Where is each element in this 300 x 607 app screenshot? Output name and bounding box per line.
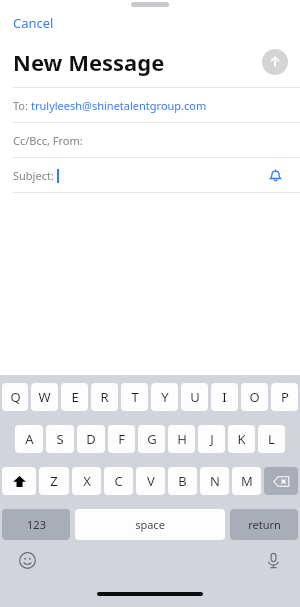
button[interactable]: 123 (2, 509, 70, 540)
button[interactable]: Backspace (264, 467, 298, 495)
staticText: D (86, 430, 96, 448)
button[interactable]: Shift (2, 467, 36, 495)
staticText: return (248, 517, 281, 532)
button[interactable]: M (232, 467, 261, 495)
staticText: N (210, 472, 220, 490)
staticText: Q (10, 388, 21, 406)
staticText: R (100, 388, 109, 406)
staticText: space (135, 517, 165, 532)
button[interactable]: Notify me (264, 164, 286, 186)
button[interactable]: W (31, 383, 58, 411)
staticText: S (56, 430, 64, 448)
button[interactable]: Z (39, 467, 69, 495)
staticText: Subject: (13, 168, 57, 183)
staticText: Cancel (13, 14, 54, 32)
button[interactable]: N (200, 467, 229, 495)
staticText: U (190, 388, 200, 406)
button[interactable]: G (138, 425, 165, 453)
button[interactable]: F (108, 425, 135, 453)
button[interactable]: O (241, 383, 268, 411)
button[interactable]: S (46, 425, 74, 453)
staticText: H (177, 430, 187, 448)
staticText: G (147, 430, 157, 448)
staticText: X (83, 472, 91, 490)
button[interactable]: Cancel (11, 12, 56, 34)
button[interactable]: R (91, 383, 118, 411)
button[interactable]: T (121, 383, 148, 411)
staticText: trulyleesh@shinetalentgroup.com (31, 98, 207, 113)
staticText: F (118, 430, 125, 448)
button[interactable]: K (228, 425, 255, 453)
button[interactable]: To: (0, 88, 300, 122)
button[interactable]: V (136, 467, 165, 495)
staticText: T (131, 388, 139, 406)
staticText: J (210, 430, 214, 448)
button[interactable]: C (104, 467, 133, 495)
button[interactable]: B (168, 467, 197, 495)
button[interactable]: Q (2, 383, 28, 411)
staticText: 123 (27, 517, 46, 532)
staticText: I (222, 388, 227, 406)
button[interactable]: D (77, 425, 105, 453)
button[interactable]: Subject: (0, 158, 300, 192)
button[interactable]: E (61, 383, 88, 411)
staticText: B (178, 472, 187, 490)
button[interactable]: U (181, 383, 208, 411)
button[interactable]: Emoji (17, 550, 37, 570)
staticText: P (281, 388, 289, 406)
button[interactable]: space (75, 509, 225, 540)
button[interactable]: Y (151, 383, 178, 411)
staticText: C (114, 472, 123, 490)
staticText: Z (50, 472, 58, 490)
staticText: W (38, 388, 51, 406)
staticText: E (71, 388, 79, 406)
button[interactable]: Send (262, 49, 288, 75)
staticText: V (147, 472, 155, 490)
staticText: Cc/Bcc, From: (13, 133, 83, 148)
button[interactable]: X (72, 467, 101, 495)
button[interactable]: Dictation (263, 550, 283, 570)
staticText: M (241, 472, 253, 490)
staticText: To: (13, 98, 31, 113)
button[interactable]: I (211, 383, 238, 411)
staticText: A (25, 430, 34, 448)
staticText: K (237, 430, 246, 448)
staticText: Y (161, 388, 169, 406)
button[interactable]: return (230, 509, 298, 540)
button[interactable]: L (258, 425, 285, 453)
staticText: L (268, 430, 275, 448)
button[interactable]: H (168, 425, 195, 453)
button[interactable]: P (271, 383, 298, 411)
staticText: O (249, 388, 260, 406)
button[interactable]: Cc/Bcc, From: (0, 123, 300, 157)
staticText: New Message (13, 47, 165, 77)
button[interactable]: A (15, 425, 43, 453)
button[interactable]: J (198, 425, 225, 453)
